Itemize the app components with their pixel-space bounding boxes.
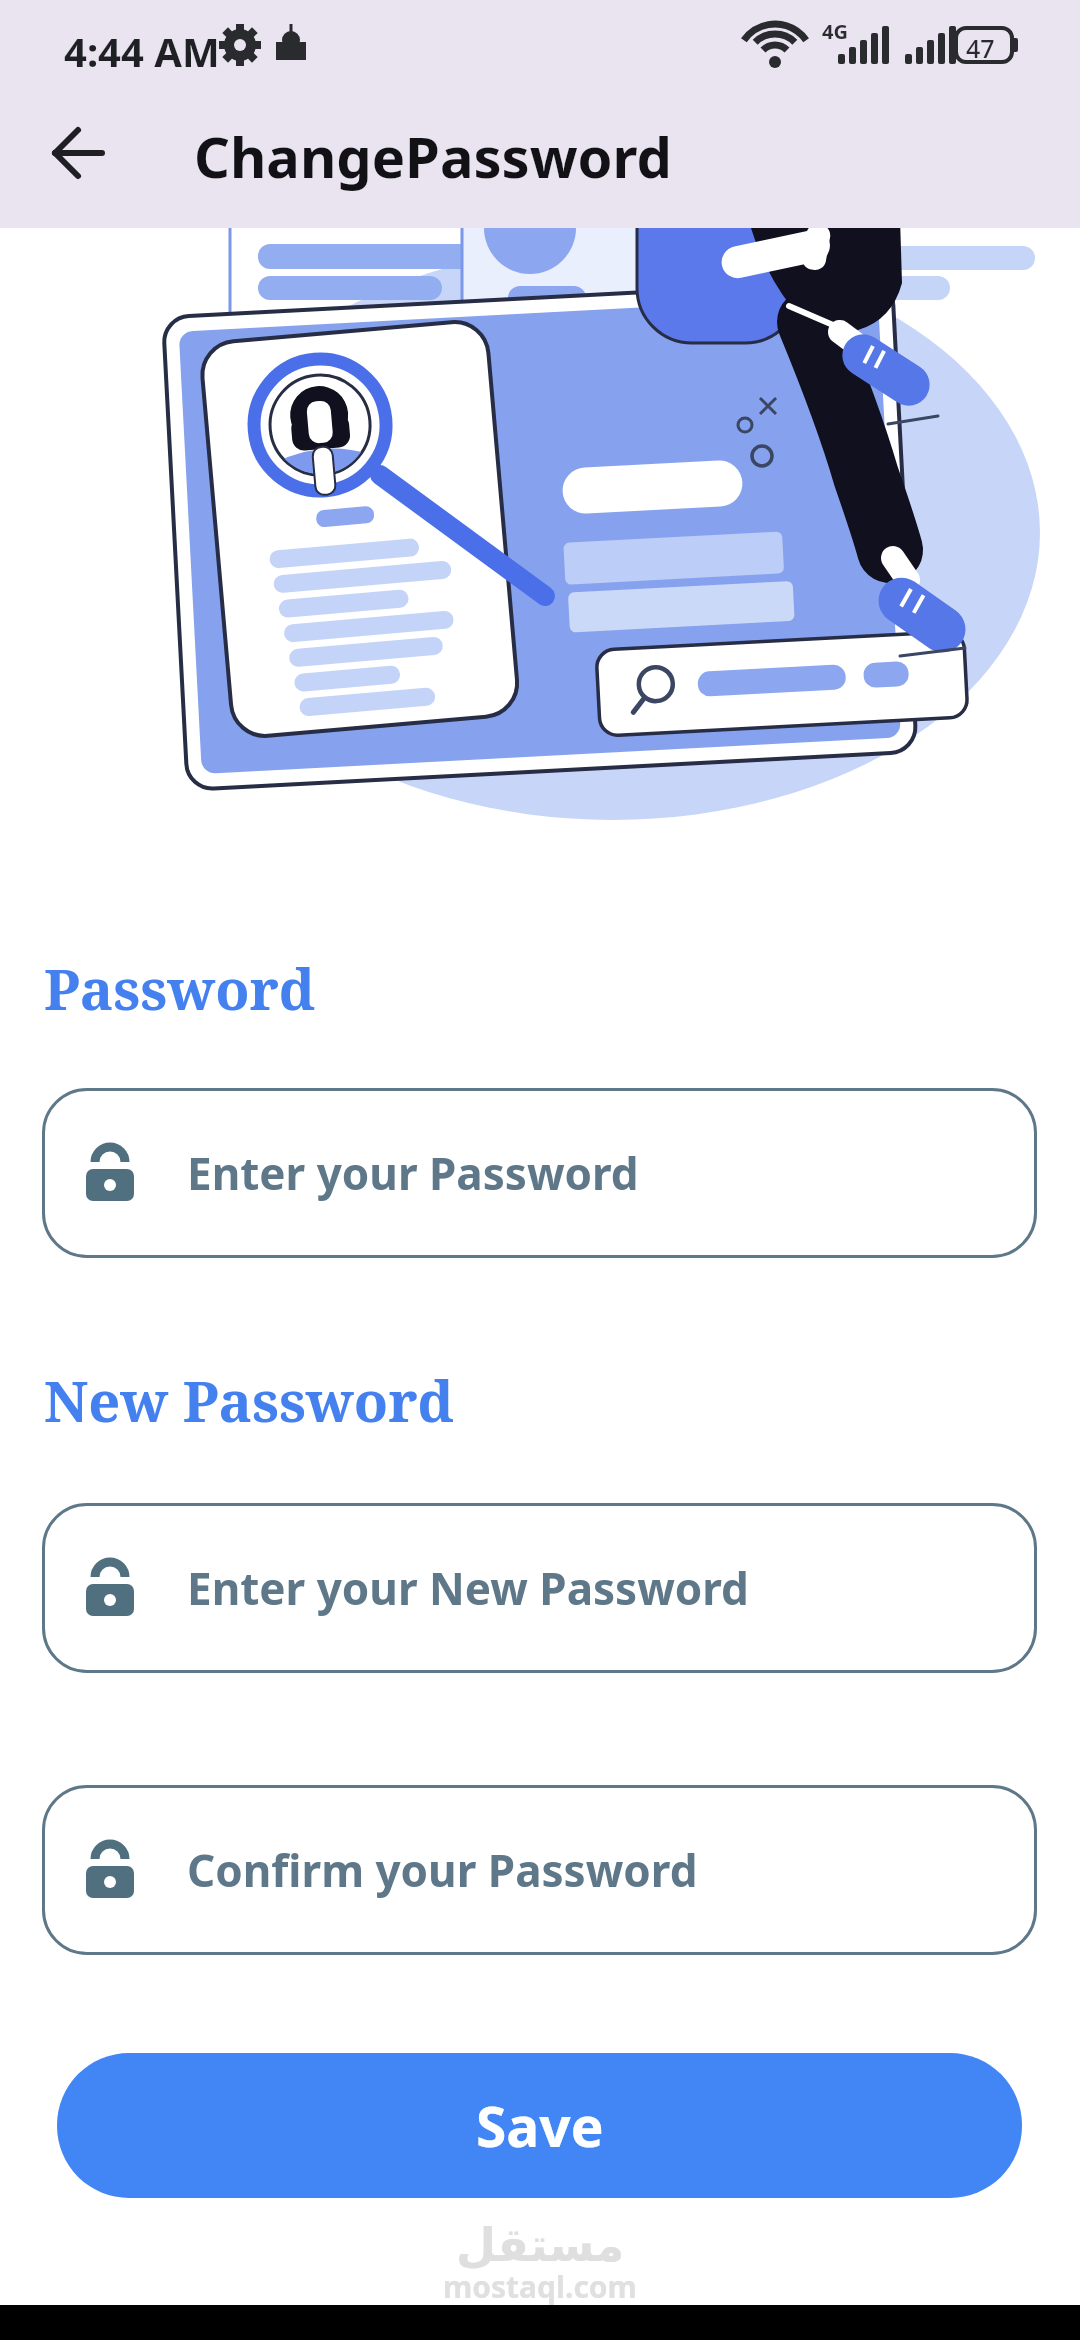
staticText: 4:44 AM: [64, 24, 220, 78]
button[interactable]: Enter your Password: [42, 1088, 1037, 1258]
button[interactable]: Enter your New Password: [42, 1503, 1037, 1673]
staticText: مستقل: [456, 2218, 625, 2272]
staticText: mostaql.com: [443, 2266, 637, 2307]
staticText: 47: [966, 31, 995, 65]
button[interactable]: Save: [57, 2053, 1022, 2198]
staticText: ChangePassword: [194, 118, 672, 194]
staticText: Enter your Password: [187, 1143, 639, 1203]
staticText: New Password: [44, 1362, 454, 1438]
staticText: Password: [44, 950, 316, 1026]
button[interactable]: [30, 120, 130, 190]
button[interactable]: Confirm your Password: [42, 1785, 1037, 1955]
staticText: Confirm your Password: [187, 1840, 698, 1900]
staticText: Enter your New Password: [187, 1558, 749, 1618]
staticText: 4G: [822, 18, 848, 45]
staticText: Save: [476, 2088, 604, 2163]
